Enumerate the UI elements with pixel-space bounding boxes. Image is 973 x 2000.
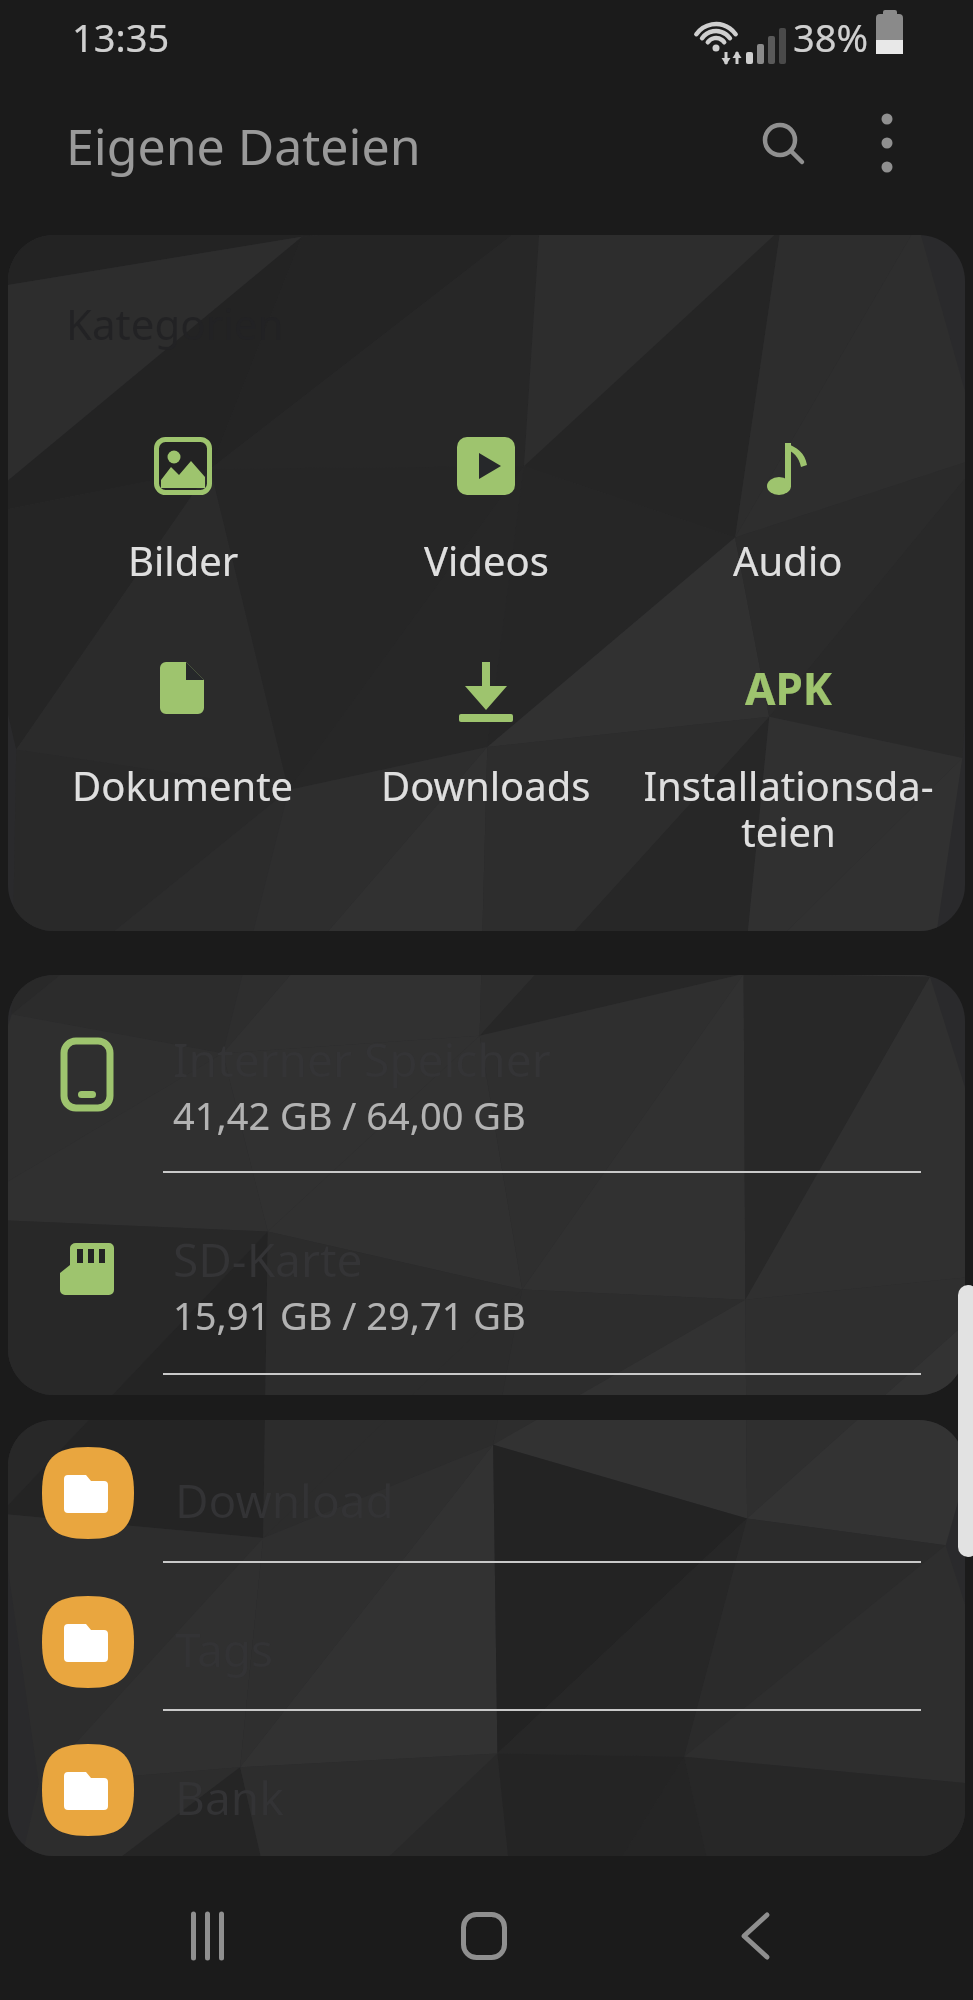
- button[interactable]: Download: [8, 1427, 965, 1562]
- staticText: 38%: [793, 11, 869, 63]
- staticText: 13:35: [72, 11, 170, 63]
- staticText: Bank: [175, 1766, 284, 1829]
- button[interactable]: Interner Speicher: [8, 985, 965, 1175]
- staticText: Audio: [733, 533, 843, 587]
- staticText: Bilder: [128, 533, 239, 587]
- staticText: Download: [175, 1469, 394, 1532]
- staticText: Eigene Dateien: [66, 112, 421, 180]
- button[interactable]: [146, 1886, 276, 1986]
- staticText: 15,91 GB / 29,71 GB: [173, 1289, 526, 1341]
- button[interactable]: [755, 115, 811, 171]
- staticText: Downloads: [381, 758, 591, 812]
- staticText: 41,42 GB / 64,00 GB: [173, 1089, 526, 1141]
- staticText: SD-Karte: [173, 1228, 363, 1291]
- button[interactable]: Bank: [8, 1724, 965, 1859]
- button[interactable]: Tags: [8, 1576, 965, 1711]
- button[interactable]: [862, 115, 912, 165]
- button[interactable]: Downloads: [366, 650, 606, 850]
- button[interactable]: [690, 1886, 820, 1986]
- staticText: APK: [745, 658, 832, 718]
- staticText: Dokumente: [72, 758, 294, 812]
- button[interactable]: Dokumente: [63, 650, 303, 850]
- button[interactable]: SD-Karte: [8, 1185, 965, 1375]
- staticText: Installationsda- teien: [643, 758, 934, 859]
- button[interactable]: Audio: [668, 425, 908, 595]
- button[interactable]: Bilder: [63, 425, 303, 595]
- button[interactable]: Videos: [366, 425, 606, 595]
- staticText: Kategorien: [66, 295, 284, 352]
- button[interactable]: [420, 1886, 550, 1986]
- staticText: Videos: [424, 533, 549, 587]
- button[interactable]: APK: [638, 650, 938, 870]
